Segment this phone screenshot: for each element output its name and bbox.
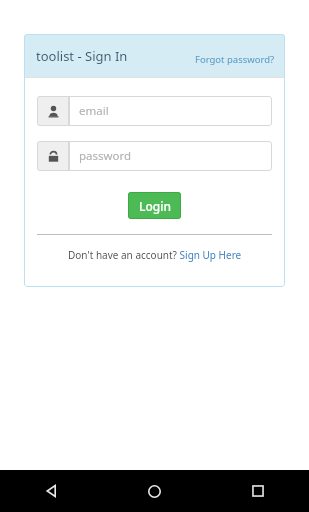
button[interactable]: Recent apps <box>206 470 309 512</box>
staticText: password <box>79 148 132 164</box>
button[interactable]: password <box>37 141 272 171</box>
button[interactable]: Home <box>103 470 206 512</box>
staticText: Login <box>139 198 171 214</box>
staticText: Don't have an account? Sign Up Here <box>68 248 242 262</box>
button[interactable]: email <box>37 96 272 126</box>
button[interactable]: Forgot password? <box>193 51 277 68</box>
staticText: Forgot password? <box>195 53 275 66</box>
button[interactable]: Back <box>0 470 103 512</box>
button[interactable]: Don't have an account? Sign Up Here <box>66 247 244 263</box>
button[interactable]: Login <box>128 192 181 219</box>
staticText: email <box>79 103 109 119</box>
staticText: toolist - Sign In <box>36 47 128 65</box>
